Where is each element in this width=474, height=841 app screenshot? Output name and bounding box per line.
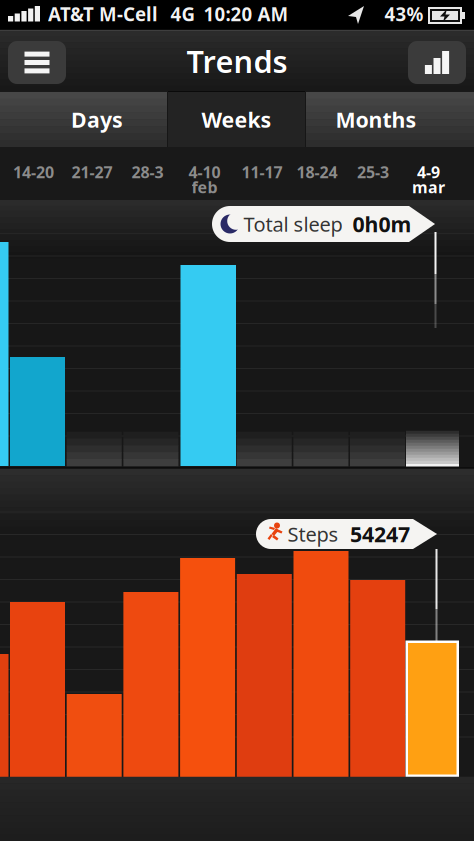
staticText: 43% xyxy=(384,2,423,26)
button[interactable]: Days xyxy=(13,92,181,147)
staticText: 4G xyxy=(170,2,195,26)
staticText: mar xyxy=(412,176,445,198)
staticText: Total sleep xyxy=(243,211,342,237)
button[interactable]: Chart options xyxy=(408,41,466,84)
button[interactable]: Menu xyxy=(8,41,66,84)
staticText: 28-3 xyxy=(131,161,163,183)
staticText: AT&T M-Cell xyxy=(48,2,158,26)
staticText: 54247 xyxy=(350,520,410,548)
staticText: 0h0m xyxy=(352,210,411,238)
staticText: 25-3 xyxy=(357,161,389,183)
staticText: Steps xyxy=(287,521,338,547)
button[interactable]: Weeks xyxy=(168,92,305,147)
button[interactable]: Months xyxy=(291,92,460,147)
staticText: Months xyxy=(335,105,416,134)
staticText: 10:20 AM xyxy=(203,2,288,26)
staticText: 14-20 xyxy=(13,161,54,183)
staticText: 21-27 xyxy=(71,161,112,183)
staticText: 11-17 xyxy=(241,161,282,183)
staticText: Days xyxy=(71,105,123,134)
staticText: Weeks xyxy=(201,105,271,134)
staticText: feb xyxy=(191,176,217,198)
staticText: 18-24 xyxy=(296,161,337,183)
staticText: 4-9 xyxy=(417,161,440,183)
staticText: 4-10 xyxy=(188,161,220,183)
staticText: Trends xyxy=(186,41,287,81)
